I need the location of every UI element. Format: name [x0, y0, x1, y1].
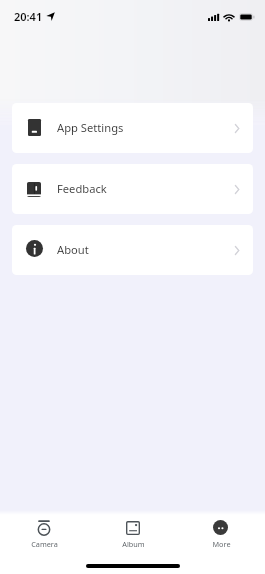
- button[interactable]: Feedback: [12, 164, 253, 214]
- staticText: Camera: [31, 539, 58, 549]
- staticText: Album: [122, 539, 145, 549]
- staticText: About: [57, 242, 89, 257]
- button[interactable]: Album: [98, 515, 168, 549]
- button[interactable]: About: [12, 225, 253, 275]
- button[interactable]: Camera: [9, 515, 79, 549]
- button[interactable]: More: [186, 515, 256, 549]
- other: More: [213, 520, 228, 535]
- staticText: 20:41: [14, 9, 43, 24]
- staticText: More: [212, 539, 231, 549]
- button[interactable]: App Settings: [12, 103, 253, 153]
- staticText: Feedback: [57, 181, 107, 196]
- staticText: App Settings: [57, 120, 124, 135]
